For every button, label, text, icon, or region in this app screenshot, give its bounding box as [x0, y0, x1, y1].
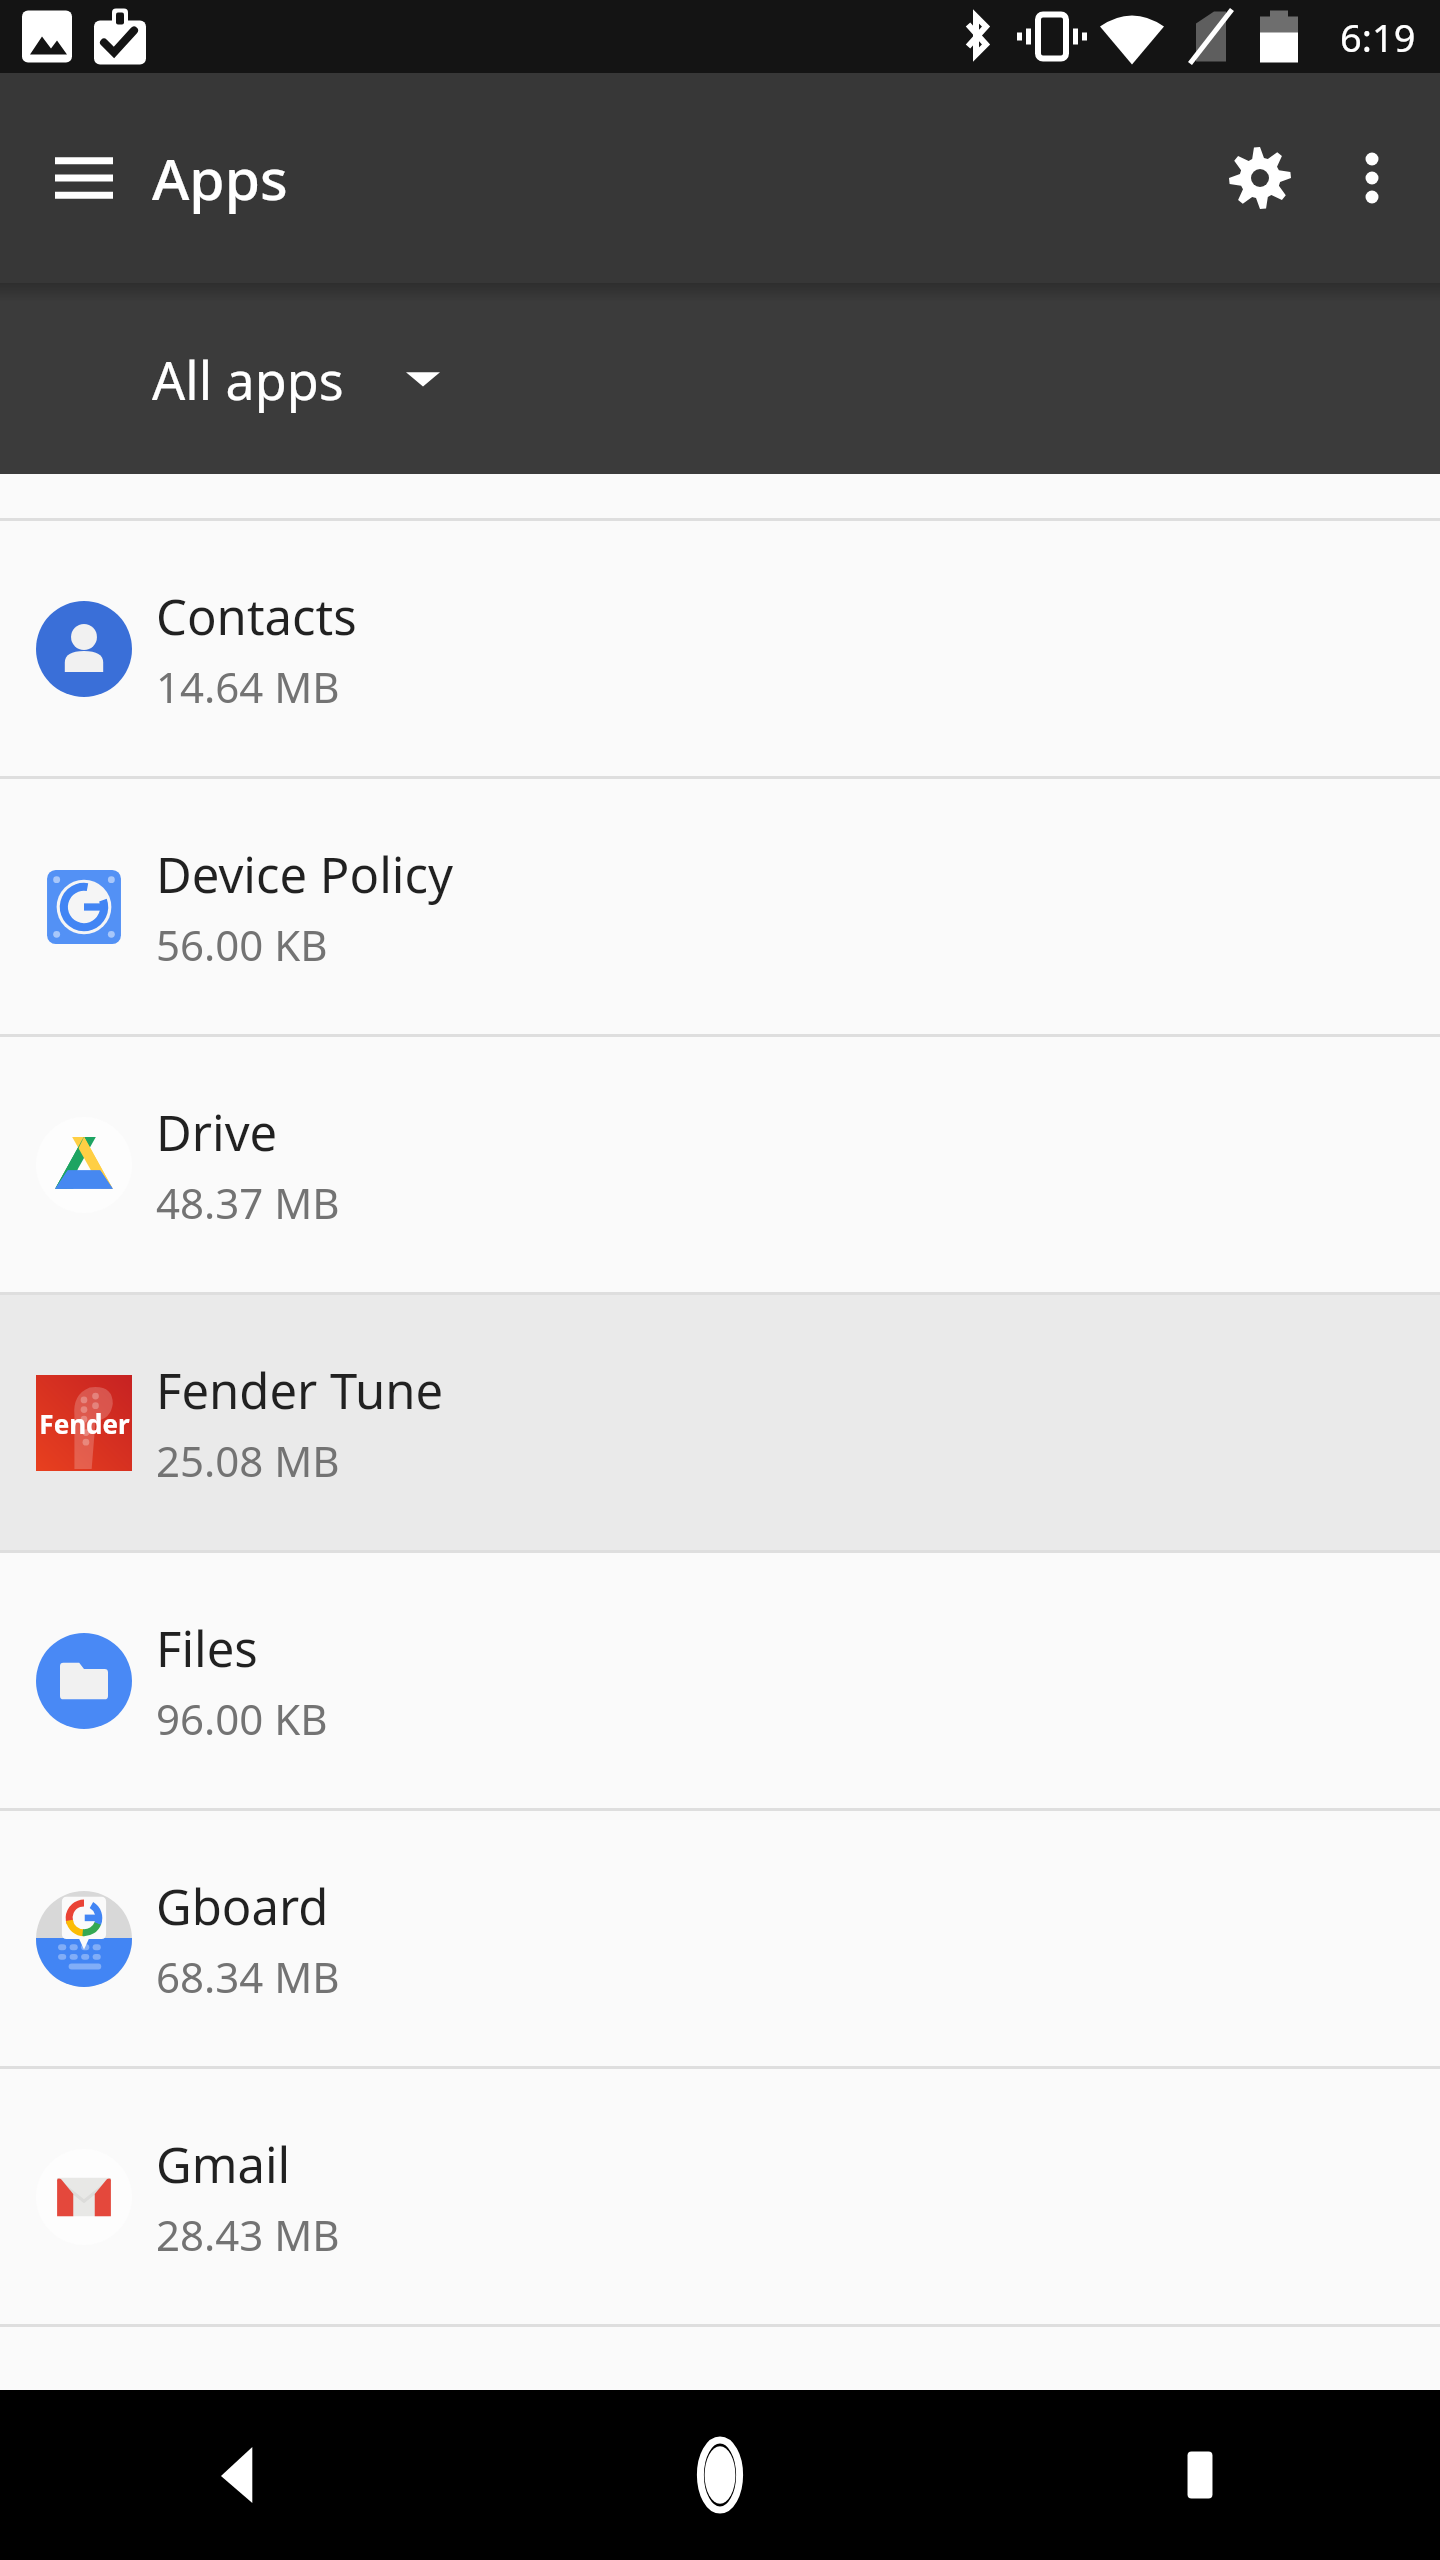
- staticText: 6:19: [1340, 11, 1416, 63]
- staticText: Device Policy: [156, 841, 453, 908]
- staticText: Gboard: [156, 1873, 329, 1940]
- button[interactable]: Home: [480, 2390, 960, 2560]
- button[interactable]: More options: [1322, 128, 1422, 228]
- staticText: Apps: [152, 139, 288, 217]
- staticText: 25.08 MB: [156, 1432, 340, 1489]
- button[interactable]: Fender: [0, 1295, 1440, 1550]
- staticText: 96.00 KB: [156, 1690, 328, 1747]
- button[interactable]: Gboard: [0, 1811, 1440, 2066]
- staticText: Drive: [156, 1099, 278, 1166]
- button[interactable]: Device Policy: [0, 779, 1440, 1034]
- button[interactable]: All apps: [152, 309, 540, 449]
- staticText: Files: [156, 1615, 258, 1682]
- button[interactable]: Recent apps: [960, 2390, 1440, 2560]
- staticText: Gmail: [156, 2131, 291, 2198]
- staticText: Fender Tune: [156, 1357, 444, 1424]
- button[interactable]: Contacts: [0, 521, 1440, 776]
- button[interactable]: Drive: [0, 1037, 1440, 1292]
- button[interactable]: Settings: [1198, 116, 1322, 240]
- staticText: 48.37 MB: [156, 1174, 340, 1231]
- button[interactable]: Files: [0, 1553, 1440, 1808]
- staticText: Fender: [39, 1406, 130, 1441]
- staticText: 28.43 MB: [156, 2206, 340, 2263]
- staticText: 56.00 KB: [156, 916, 328, 973]
- staticText: Contacts: [156, 583, 357, 650]
- button[interactable]: Open navigation menu: [26, 120, 142, 236]
- staticText: All apps: [152, 344, 344, 415]
- staticText: 14.64 MB: [156, 658, 340, 715]
- button[interactable]: Gmail: [0, 2069, 1440, 2324]
- staticText: 68.34 MB: [156, 1948, 340, 2005]
- button[interactable]: Back: [0, 2390, 480, 2560]
